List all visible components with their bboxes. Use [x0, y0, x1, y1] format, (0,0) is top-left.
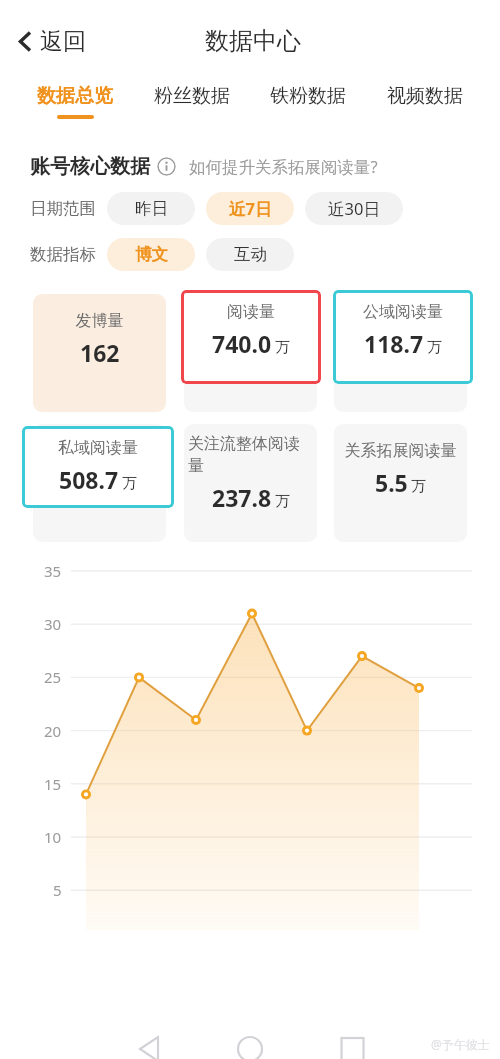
staticText: 35 — [44, 561, 62, 581]
staticText: 账号核心数据 — [30, 154, 150, 179]
button[interactable]: 说明 — [157, 157, 176, 176]
staticText: 162 — [80, 337, 120, 368]
staticText: 粉丝数据 — [154, 84, 230, 108]
button[interactable]: 铁粉数据 — [262, 82, 354, 121]
staticText: 数据中心 — [205, 26, 301, 56]
staticText: 昨日 — [135, 198, 168, 219]
button[interactable]: 阅读量 — [181, 290, 321, 384]
staticText: 日期范围 — [30, 198, 96, 219]
staticText: 万 — [275, 492, 290, 511]
staticText: 如何提升关系拓展阅读量? — [189, 155, 378, 178]
button[interactable]: 近7日 — [206, 192, 294, 225]
staticText: 近30日 — [328, 197, 380, 220]
staticText: 118.7 — [364, 328, 424, 359]
staticText: 阅读量 — [185, 302, 317, 322]
button[interactable] — [334, 294, 467, 412]
staticText: 数据总览 — [37, 84, 113, 108]
button[interactable]: 返回 — [14, 21, 90, 62]
button[interactable] — [184, 424, 317, 542]
staticText: 万 — [122, 474, 137, 493]
staticText: 私域阅读量 — [26, 438, 170, 458]
button[interactable] — [334, 424, 467, 542]
staticText: 万 — [275, 338, 290, 357]
button[interactable]: 近30日 — [305, 192, 403, 225]
staticText: 30 — [44, 614, 62, 634]
staticText: 关注流整体阅读量 — [188, 434, 313, 476]
staticText: 237.8 — [212, 482, 272, 513]
staticText: 公域阅读量 — [337, 302, 469, 322]
staticText: 互动 — [234, 244, 267, 265]
staticText: 740.0 — [212, 328, 272, 359]
staticText: 万 — [427, 338, 442, 357]
button[interactable]: 博文 — [107, 238, 195, 271]
staticText: 铁粉数据 — [270, 84, 346, 108]
button[interactable]: 私域阅读量 — [22, 426, 174, 508]
staticText: 10 — [44, 827, 62, 847]
staticText: 发博量 — [37, 311, 162, 331]
staticText: 25 — [44, 667, 62, 687]
staticText: 万 — [411, 477, 426, 496]
staticText: 508.7 — [59, 464, 119, 495]
staticText: 视频数据 — [387, 84, 463, 108]
staticText: 返回 — [40, 27, 86, 56]
button[interactable]: 视频数据 — [379, 82, 471, 121]
button[interactable]: 数据总览 — [29, 82, 121, 121]
button[interactable]: 如何提升关系拓展阅读量? — [189, 155, 378, 178]
staticText: 近7日 — [229, 197, 272, 220]
button[interactable]: 粉丝数据 — [146, 82, 238, 121]
button[interactable]: 互动 — [206, 238, 294, 271]
staticText: 20 — [44, 721, 62, 741]
staticText: 数据指标 — [30, 244, 96, 265]
staticText: 关系拓展阅读量 — [338, 441, 463, 461]
staticText: 5.5 — [375, 467, 408, 498]
button[interactable]: 昨日 — [107, 192, 195, 225]
button[interactable] — [184, 294, 317, 412]
staticText: 5 — [53, 880, 62, 900]
button[interactable] — [33, 424, 166, 542]
button[interactable]: 公域阅读量 — [333, 290, 473, 384]
staticText: 15 — [44, 774, 62, 794]
staticText: @予午彼士 — [431, 1036, 490, 1052]
button[interactable] — [33, 294, 166, 412]
staticText: 博文 — [135, 244, 168, 265]
